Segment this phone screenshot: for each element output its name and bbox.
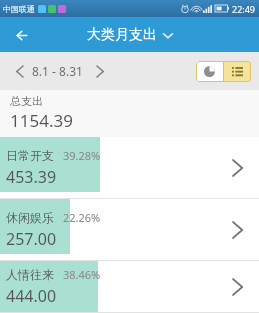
button[interactable]: 大类月支出 (87, 26, 173, 44)
staticText: 257.00 (6, 228, 57, 250)
staticText: 453.39 (6, 166, 57, 188)
staticText: 人情往来 (6, 267, 54, 282)
button[interactable]: 日常开支 (0, 137, 259, 199)
button[interactable]: Pie chart view (196, 61, 223, 82)
staticText: 休闲娱乐 (6, 210, 54, 225)
button[interactable]: List view (224, 61, 251, 82)
staticText: 8.1 - 8.31 (32, 63, 83, 79)
button[interactable]: 休闲娱乐 (0, 199, 259, 261)
staticText: 444.00 (6, 285, 57, 307)
button[interactable]: 人情往来 (0, 261, 259, 313)
button[interactable]: Back (6, 21, 34, 49)
staticText: 大类月支出 (87, 26, 157, 44)
staticText: 1154.39 (10, 109, 73, 132)
staticText: 38.46% (63, 267, 101, 282)
staticText: 22.26% (63, 210, 101, 225)
staticText: 39.28% (63, 148, 101, 163)
staticText: 22:49 (232, 3, 256, 15)
staticText: 日常开支 (6, 148, 54, 163)
staticText: 总支出 (10, 94, 43, 108)
staticText: 中国联通 (3, 4, 35, 14)
button[interactable]: Next month (89, 60, 111, 82)
button[interactable]: Previous month (8, 60, 30, 82)
